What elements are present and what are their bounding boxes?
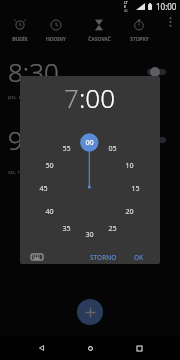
staticText: 00 <box>85 137 94 145</box>
staticText: 4G <box>124 9 128 13</box>
staticText: po, út, st, čt, pá <box>8 93 52 101</box>
button[interactable]: STORNO <box>86 250 121 264</box>
button[interactable]: Home <box>78 336 102 360</box>
staticText: 20 <box>125 206 134 214</box>
button[interactable]: Toggle alarm <box>142 63 168 80</box>
staticText: 15 <box>131 183 140 191</box>
staticText: LTE <box>124 0 128 9</box>
staticText: OK <box>134 253 144 262</box>
button[interactable]: Recents <box>127 336 151 360</box>
staticText: 9:00 <box>8 122 59 157</box>
button[interactable]: HODINY <box>34 14 78 46</box>
staticText: 05 <box>108 143 117 151</box>
staticText: 10:00 <box>156 1 177 12</box>
staticText: BUDÍK <box>12 36 28 43</box>
button[interactable]: Back <box>29 336 53 360</box>
staticText: :00 <box>79 80 116 115</box>
staticText: 7 <box>64 80 79 115</box>
staticText: 8:30 <box>8 54 59 89</box>
staticText: 40 <box>45 206 54 214</box>
button[interactable]: Add alarm <box>77 299 103 325</box>
staticText: HODINY <box>46 36 66 43</box>
staticText: ČASOVAČ <box>88 36 111 43</box>
staticText: so, ne <box>8 168 25 176</box>
staticText: STORNO <box>90 253 117 262</box>
button[interactable]: More options <box>162 14 178 30</box>
button[interactable]: STOPKY <box>117 14 161 46</box>
staticText: 25 <box>108 223 117 231</box>
staticText: 45 <box>39 183 48 191</box>
button[interactable]: Switch to keyboard input <box>31 251 43 263</box>
button[interactable]: BUDÍK <box>0 14 42 46</box>
button[interactable]: OK <box>130 250 148 264</box>
button[interactable]: Toggle alarm <box>142 131 168 148</box>
staticText: 55 <box>62 143 71 151</box>
button[interactable]: ČASOVAČ <box>77 14 121 46</box>
staticText: 50 <box>45 160 54 168</box>
staticText: 35 <box>62 223 71 231</box>
staticText: 10 <box>125 160 134 168</box>
staticText: 30 <box>85 229 94 237</box>
staticText: STOPKY <box>130 36 149 43</box>
